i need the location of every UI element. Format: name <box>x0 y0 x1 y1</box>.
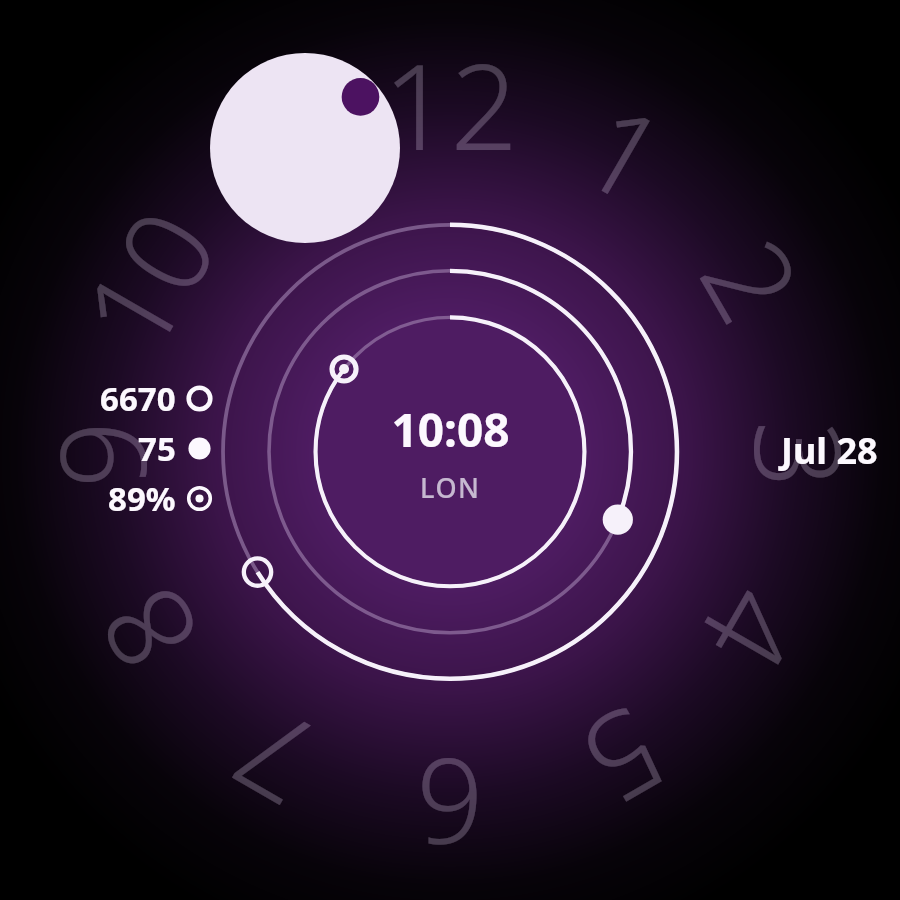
staticText: 8 <box>60 560 234 699</box>
staticText: 6 <box>416 724 484 885</box>
staticText: 2 <box>666 210 840 349</box>
staticText: 89% <box>108 476 176 521</box>
button[interactable]: 6670 <box>88 376 213 521</box>
button[interactable]: Moon phase <box>210 53 400 243</box>
staticText: 12 <box>383 24 518 185</box>
button[interactable]: Jul 28 <box>781 426 878 475</box>
staticText: 10:08 <box>391 398 510 461</box>
staticText: LON <box>420 469 481 506</box>
staticText: 7 <box>205 671 345 844</box>
staticText: 4 <box>666 560 840 699</box>
staticText: 75 <box>138 426 176 471</box>
staticText: 5 <box>555 671 695 844</box>
staticText: 3 <box>719 420 880 488</box>
staticText: 1 <box>555 65 695 238</box>
button[interactable]: 10:08 <box>391 398 510 506</box>
staticText: Jul 28 <box>781 426 878 475</box>
staticText: 9 <box>19 420 180 488</box>
staticText: 10 <box>44 181 251 378</box>
staticText: 6670 <box>100 376 176 421</box>
staticText: 11 <box>177 48 374 255</box>
